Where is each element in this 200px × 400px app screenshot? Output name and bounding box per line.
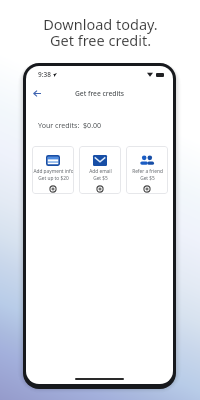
staticText: Get $5 xyxy=(93,175,108,182)
staticText: Download today. Get free credit. xyxy=(43,14,158,50)
button[interactable]: Refer a friend xyxy=(126,146,168,194)
button[interactable]: Add payment info xyxy=(32,146,74,194)
staticText: Get free credits xyxy=(75,89,125,98)
staticText: Refer a friend xyxy=(132,168,163,175)
button[interactable]: Add email xyxy=(79,146,121,194)
button[interactable]: Back xyxy=(26,83,48,104)
staticText: Add email xyxy=(89,168,112,175)
staticText: Your credits: $0.00 xyxy=(38,120,102,130)
staticText: 9:38 xyxy=(38,70,51,79)
staticText: Get $5 xyxy=(140,175,155,182)
staticText: Get up to $20 xyxy=(38,175,69,182)
staticText: Add payment info xyxy=(33,168,74,175)
